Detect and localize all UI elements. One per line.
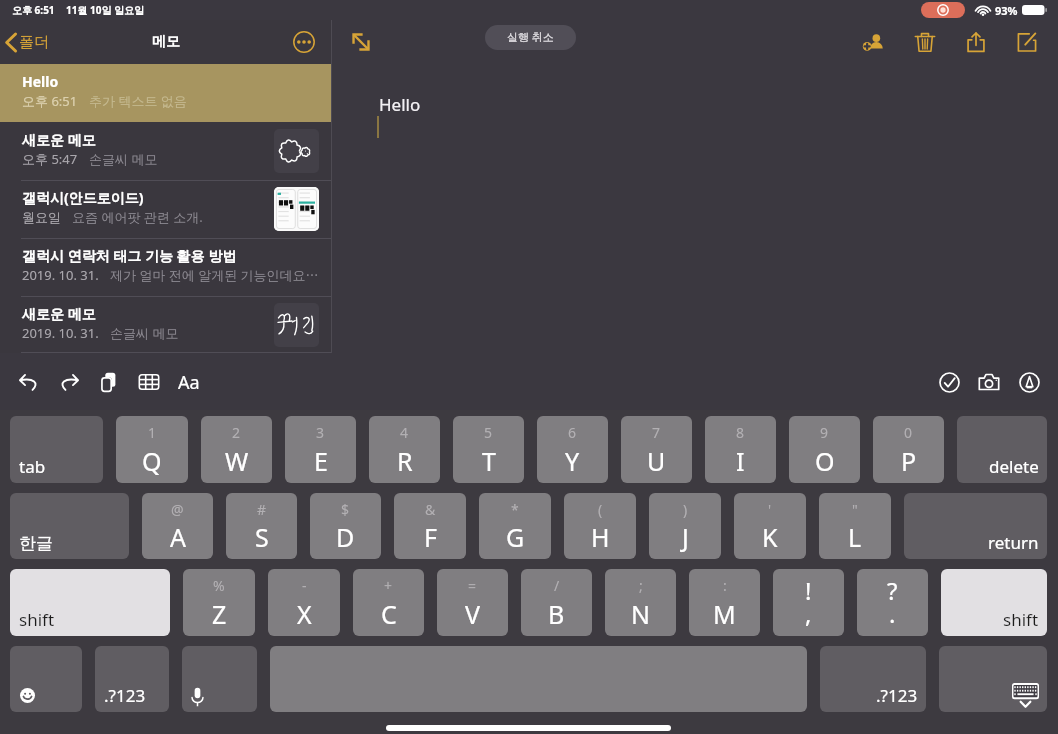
button[interactable]: shift <box>941 569 1047 636</box>
button[interactable]: Undo <box>12 365 46 399</box>
button[interactable]: @ <box>142 493 213 559</box>
staticText: R <box>397 444 413 478</box>
staticText: G <box>506 520 525 554</box>
button[interactable]: ! <box>773 569 844 636</box>
staticText: 2019. 10. 31. <box>22 266 99 284</box>
staticText: 갤럭시(안드로이드) <box>22 188 144 207</box>
button[interactable]: ? <box>857 569 928 636</box>
button[interactable]: - <box>268 569 340 636</box>
staticText: 한글 <box>19 533 53 554</box>
button[interactable]: Paste <box>92 365 126 399</box>
other: Dictate <box>191 687 204 707</box>
button[interactable]: shift <box>10 569 170 636</box>
button[interactable]: ) <box>649 493 721 559</box>
button[interactable]: 2 <box>201 416 272 483</box>
button[interactable]: + <box>353 569 424 636</box>
button[interactable]: 0 <box>873 416 944 483</box>
button[interactable]: % <box>183 569 255 636</box>
button[interactable]: .?123 <box>820 646 926 712</box>
staticText: 요즘 에어팟 관련 소개. <box>72 208 203 226</box>
button[interactable]: Markup <box>1012 365 1046 399</box>
button[interactable]: 갤럭시 연락처 태그 기능 활용 방법 <box>0 238 331 296</box>
button[interactable]: ; <box>605 569 676 636</box>
staticText: .?123 <box>876 684 918 707</box>
button[interactable]: 새로운 메모 <box>0 122 331 180</box>
staticText: # <box>257 500 267 519</box>
button[interactable]: 1 <box>116 416 188 483</box>
button[interactable]: 7 <box>621 416 692 483</box>
button[interactable]: 한글 <box>10 493 129 559</box>
staticText: X <box>297 597 312 631</box>
staticText: 오후 5:47 <box>22 150 78 168</box>
button[interactable]: Expand <box>349 30 373 54</box>
button[interactable]: 8 <box>705 416 776 483</box>
staticText: 9 <box>820 423 829 442</box>
staticText: I <box>736 444 745 478</box>
staticText: J <box>682 520 689 554</box>
button[interactable]: Share <box>961 27 991 57</box>
button[interactable]: 실행 취소 <box>485 25 576 50</box>
button[interactable]: 5 <box>453 416 524 483</box>
staticText: 93% <box>995 3 1018 18</box>
button[interactable]: 폴더 <box>0 26 55 59</box>
button[interactable]: ( <box>564 493 636 559</box>
button[interactable]: Checklist <box>932 365 966 399</box>
button[interactable]: .?123 <box>95 646 169 712</box>
button[interactable]: Delete <box>910 27 940 57</box>
staticText: D <box>336 520 355 554</box>
staticText: C <box>381 597 397 631</box>
button[interactable]: tab <box>10 416 103 483</box>
staticText: 오후 6:51 <box>22 92 78 110</box>
button[interactable]: 갤럭시(안드로이드) <box>0 180 331 238</box>
button[interactable]: Emoji <box>10 646 82 712</box>
staticText: = <box>468 576 477 595</box>
staticText: M <box>713 597 736 631</box>
staticText: 8 <box>736 423 745 442</box>
staticText: 갤럭시 연락처 태그 기능 활용 방법 <box>22 246 237 265</box>
button[interactable]: Redo <box>52 365 86 399</box>
staticText: P <box>901 444 917 478</box>
button[interactable]: 4 <box>369 416 440 483</box>
staticText: ? <box>887 574 898 607</box>
staticText: % <box>213 576 225 595</box>
staticText: 7 <box>652 423 661 442</box>
button[interactable]: delete <box>957 416 1047 483</box>
button[interactable]: Camera <box>972 365 1006 399</box>
button[interactable]: ' <box>734 493 806 559</box>
staticText: 메모 <box>152 33 180 51</box>
button[interactable]: $ <box>310 493 381 559</box>
button[interactable]: Hello <box>0 64 331 122</box>
staticText: : <box>723 576 727 595</box>
button[interactable]: # <box>226 493 297 559</box>
button[interactable]: " <box>819 493 891 559</box>
button[interactable]: return <box>904 493 1047 559</box>
staticText: 손글씨 메모 <box>110 324 179 342</box>
staticText: * <box>511 500 519 519</box>
button[interactable]: = <box>437 569 508 636</box>
button[interactable]: Hide keyboard <box>939 646 1047 712</box>
staticText: Hello <box>379 93 421 116</box>
button[interactable]: & <box>394 493 466 559</box>
staticText: 추가 텍스트 없음 <box>89 92 187 110</box>
button[interactable]: Aa <box>172 365 206 399</box>
button[interactable]: Add people <box>859 27 889 57</box>
button[interactable]: Compose <box>1012 27 1042 57</box>
button[interactable]: 9 <box>789 416 860 483</box>
staticText: L <box>848 520 862 554</box>
button[interactable]: Table <box>132 365 166 399</box>
button[interactable]: * <box>479 493 551 559</box>
button[interactable]: 새로운 메모 <box>0 296 331 353</box>
button[interactable]: : <box>689 569 760 636</box>
button[interactable]: 3 <box>285 416 356 483</box>
button[interactable]: More options <box>293 31 315 53</box>
staticText: tab <box>19 455 46 478</box>
other: Emoji <box>20 688 35 703</box>
button[interactable]: 6 <box>537 416 608 483</box>
staticText: return <box>988 531 1039 554</box>
staticText: 제가 얼마 전에 알게된 기능인데요. 연… <box>110 266 319 284</box>
staticText: S <box>255 520 269 554</box>
button[interactable]: / <box>521 569 592 636</box>
button[interactable]: Dictate <box>182 646 257 712</box>
staticText: shift <box>1003 608 1039 631</box>
